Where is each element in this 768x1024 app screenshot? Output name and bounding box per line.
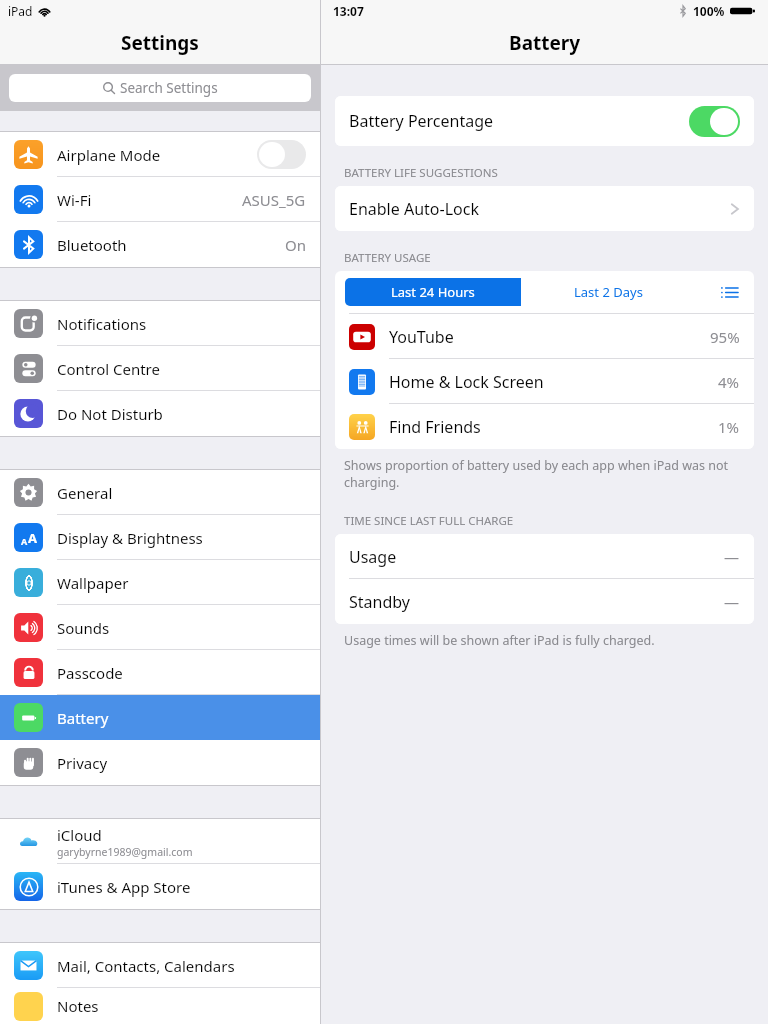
- staticText: Control Centre: [57, 359, 160, 379]
- staticText: 95%: [710, 327, 740, 347]
- staticText: YouTube: [389, 326, 710, 348]
- staticText: Usage times will be shown after iPad is …: [344, 632, 655, 649]
- button[interactable]: Wi-Fi: [0, 177, 320, 222]
- button[interactable]: Notifications: [0, 301, 320, 346]
- button[interactable]: iCloud: [0, 819, 320, 864]
- staticText: Mail, Contacts, Calendars: [57, 956, 235, 976]
- button[interactable]: Wallpaper: [0, 560, 320, 605]
- button[interactable]: [689, 106, 740, 137]
- staticText: Battery: [509, 30, 581, 56]
- button[interactable]: Find Friends: [335, 404, 754, 449]
- button[interactable]: Notes: [0, 988, 320, 1024]
- staticText: General: [57, 483, 113, 503]
- staticText: garybyrne1989@gmail.com: [57, 845, 193, 859]
- button[interactable]: Privacy: [0, 740, 320, 785]
- staticText: —: [724, 547, 740, 567]
- staticText: Find Friends: [389, 416, 718, 438]
- staticText: 100%: [693, 3, 725, 19]
- staticText: Display & Brightness: [57, 528, 203, 548]
- button[interactable]: Control Centre: [0, 346, 320, 391]
- staticText: iTunes & App Store: [57, 877, 191, 897]
- button[interactable]: Battery: [0, 695, 320, 740]
- button[interactable]: Last 2 Days: [521, 278, 696, 306]
- staticText: Usage: [349, 546, 724, 568]
- staticText: iPad: [8, 3, 33, 19]
- staticText: A: [28, 529, 37, 547]
- button[interactable]: Enable Auto-Lock: [335, 186, 754, 231]
- staticText: Last 2 Days: [574, 283, 643, 301]
- staticText: Wi-Fi: [57, 190, 242, 210]
- staticText: Notifications: [57, 314, 147, 334]
- button[interactable]: Passcode: [0, 650, 320, 695]
- staticText: On: [285, 235, 306, 255]
- staticText: —: [724, 592, 740, 612]
- staticText: TIME SINCE LAST FULL CHARGE: [344, 513, 514, 529]
- button[interactable]: A: [0, 515, 320, 560]
- button[interactable]: Home & Lock Screen: [335, 359, 754, 404]
- staticText: BATTERY USAGE: [344, 250, 431, 266]
- staticText: Privacy: [57, 753, 108, 773]
- staticText: 4%: [718, 372, 740, 392]
- staticText: Passcode: [57, 663, 123, 683]
- staticText: 1%: [718, 417, 740, 437]
- button[interactable]: iTunes & App Store: [0, 864, 320, 909]
- button[interactable]: Mail, Contacts, Calendars: [0, 943, 320, 988]
- staticText: Settings: [121, 30, 199, 56]
- staticText: Airplane Mode: [57, 145, 257, 165]
- staticText: Standby: [349, 591, 724, 613]
- button[interactable]: YouTube: [335, 314, 754, 359]
- staticText: Enable Auto-Lock: [349, 198, 730, 220]
- staticText: Do Not Disturb: [57, 404, 163, 424]
- staticText: Battery: [57, 708, 109, 728]
- button[interactable]: Show by list: [714, 277, 744, 307]
- button[interactable]: Usage: [335, 534, 754, 579]
- button[interactable]: General: [0, 470, 320, 515]
- button[interactable]: Battery Percentage: [335, 96, 754, 146]
- button[interactable]: Last 24 Hours: [345, 278, 520, 306]
- staticText: Shows proportion of battery used by each…: [344, 457, 738, 491]
- button[interactable]: Do Not Disturb: [0, 391, 320, 436]
- staticText: A: [21, 535, 28, 547]
- staticText: Notes: [57, 996, 99, 1016]
- button[interactable]: Sounds: [0, 605, 320, 650]
- staticText: iCloud: [57, 825, 102, 845]
- staticText: Home & Lock Screen: [389, 371, 718, 393]
- button[interactable]: [257, 140, 306, 169]
- staticText: Last 24 Hours: [391, 283, 475, 301]
- button[interactable]: Airplane Mode: [0, 132, 320, 177]
- button[interactable]: Search Settings: [9, 74, 311, 102]
- button[interactable]: Standby: [335, 579, 754, 624]
- staticText: BATTERY LIFE SUGGESTIONS: [344, 165, 498, 181]
- staticText: Wallpaper: [57, 573, 129, 593]
- staticText: Sounds: [57, 618, 110, 638]
- staticText: Bluetooth: [57, 235, 285, 255]
- button[interactable]: Bluetooth: [0, 222, 320, 267]
- staticText: Search Settings: [120, 79, 218, 97]
- staticText: ASUS_5G: [242, 190, 306, 210]
- staticText: 13:07: [333, 3, 364, 19]
- staticText: Battery Percentage: [349, 110, 689, 132]
